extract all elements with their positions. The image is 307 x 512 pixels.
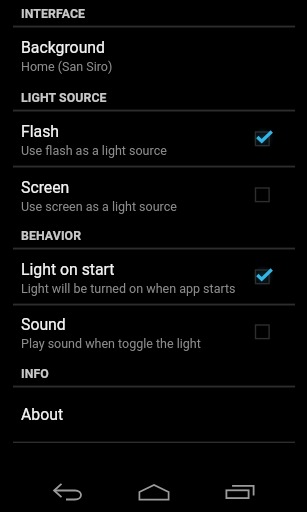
button[interactable]: Background	[0, 27, 307, 83]
button[interactable]: Recent apps	[212, 472, 268, 512]
staticText: BEHAVIOR	[21, 229, 82, 243]
staticText: LIGHT SOURCE	[21, 91, 107, 105]
staticText: Flash	[21, 122, 60, 141]
button[interactable]: About	[0, 387, 307, 442]
staticText: Use screen as a light source	[21, 199, 177, 214]
staticText: INFO	[21, 367, 49, 381]
staticText: Use flash as a light source	[21, 143, 167, 158]
button[interactable]: Unchecked	[248, 315, 282, 349]
staticText: Screen	[21, 178, 70, 197]
staticText: Light will be turned on when app starts	[21, 281, 236, 296]
staticText: Play sound when toggle the light	[21, 336, 201, 351]
staticText: Light on start	[21, 260, 115, 279]
staticText: Background	[21, 38, 105, 57]
button[interactable]: Screen	[0, 167, 307, 223]
button[interactable]: Flash	[0, 111, 307, 166]
staticText: INTERFACE	[21, 7, 86, 21]
staticText: About	[21, 405, 64, 424]
staticText: Home (San Siro)	[21, 59, 113, 74]
button[interactable]: Back	[40, 472, 96, 512]
button[interactable]: Home	[126, 472, 182, 512]
button[interactable]: Sound	[0, 305, 307, 359]
button[interactable]: Unchecked	[248, 178, 282, 212]
button[interactable]: Checked	[248, 260, 282, 294]
button[interactable]: Light on start	[0, 249, 307, 304]
staticText: Sound	[21, 315, 66, 334]
button[interactable]: Checked	[248, 122, 282, 156]
